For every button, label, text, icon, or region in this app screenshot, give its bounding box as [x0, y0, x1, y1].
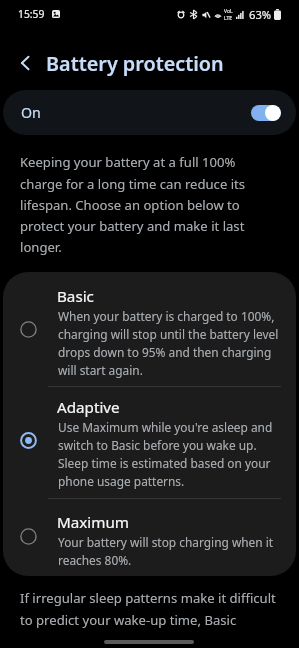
button[interactable]: On: [3, 90, 296, 135]
staticText: Battery protection: [46, 50, 224, 77]
button[interactable]: Basic: [3, 272, 296, 386]
button[interactable]: Back: [6, 44, 44, 82]
button[interactable]: Adaptive: [3, 386, 296, 498]
staticText: VoL: [224, 8, 233, 15]
staticText: LTE: [224, 15, 233, 22]
staticText: When your battery is charged to 100%, ch…: [58, 308, 284, 378]
staticText: Your battery will stop charging when it …: [58, 534, 284, 568]
staticText: On: [21, 103, 41, 122]
staticText: Keeping your battery at a full 100% char…: [20, 153, 260, 256]
button[interactable]: Maximum: [3, 498, 296, 576]
staticText: Maximum: [57, 512, 130, 533]
staticText: Basic: [57, 286, 94, 307]
staticText: 63%: [249, 7, 272, 22]
staticText: If irregular sleep patterns make it diff…: [20, 589, 282, 629]
staticText: Adaptive: [57, 397, 120, 418]
staticText: 15:59: [18, 7, 45, 21]
staticText: Use Maximum while you're asleep and swit…: [58, 419, 284, 489]
